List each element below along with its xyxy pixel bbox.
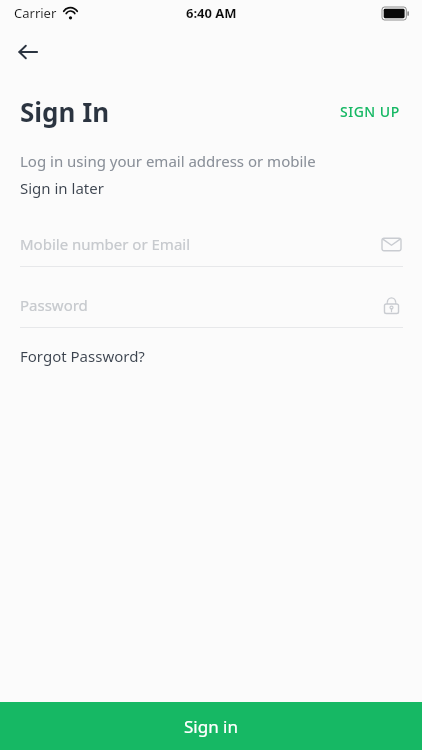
staticText: Password [20,295,88,315]
button[interactable]: Mobile number or Email [0,228,422,260]
other: Email [379,232,403,256]
staticText: 6:40 AM [186,4,237,22]
staticText: Sign in later [20,178,104,198]
staticText: Sign In [20,94,110,129]
button[interactable]: Back [8,32,48,72]
staticText: Carrier [14,4,57,22]
button[interactable]: Forgot Password? [20,344,145,368]
staticText: Log in using your email address or mobil… [20,151,316,171]
staticText: SIGN UP [340,102,400,121]
button[interactable]: Sign in later [20,178,104,198]
staticText: Mobile number or Email [20,234,191,254]
other: Show password [379,293,403,317]
button[interactable]: Sign in [0,702,422,750]
staticText: Forgot Password? [20,346,145,366]
staticText: Sign in [184,715,238,738]
button[interactable]: Password [0,289,422,321]
button[interactable]: SIGN UP [338,98,402,125]
